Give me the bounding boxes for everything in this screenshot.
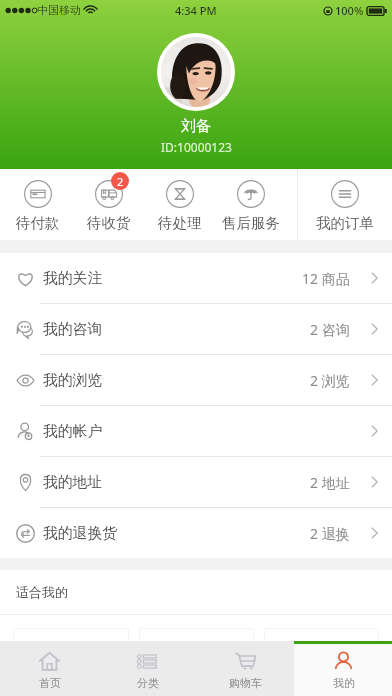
staticText: 我的地址 — [43, 473, 103, 492]
button[interactable]: 我的浏览 — [0, 355, 392, 405]
button[interactable]: 待付款 — [2, 169, 73, 240]
button[interactable]: 分类 — [98, 641, 196, 696]
staticText: 12 商品 — [302, 269, 350, 288]
staticText: 分类 — [137, 676, 159, 690]
staticText: 待处理 — [158, 214, 202, 232]
staticText: 购物车 — [229, 676, 262, 690]
staticText: 首页 — [39, 676, 61, 690]
button[interactable]: 2 — [73, 169, 144, 240]
staticText: 我的关注 — [43, 269, 103, 288]
staticText: 2 咨询 — [310, 320, 350, 339]
button[interactable]: 我的 — [294, 641, 392, 696]
staticText: 2 浏览 — [310, 371, 350, 390]
staticText: 适合我的 — [16, 584, 68, 600]
staticText: 待收货 — [87, 214, 131, 232]
button[interactable]: Profile photo — [157, 33, 235, 111]
button[interactable]: 首页 — [0, 641, 98, 696]
button[interactable]: 购物车 — [196, 641, 294, 696]
button[interactable] — [264, 628, 379, 696]
button[interactable] — [13, 628, 129, 696]
staticText: 待付款 — [16, 214, 60, 232]
button[interactable]: 我的订单 — [298, 169, 392, 240]
button[interactable]: 我的咨询 — [0, 304, 392, 354]
button[interactable]: 我的退换货 — [0, 508, 392, 558]
staticText: 我的 — [333, 676, 355, 690]
staticText: 我的订单 — [316, 214, 374, 232]
button[interactable] — [139, 628, 254, 696]
button[interactable]: 售后服务 — [215, 169, 286, 240]
staticText: 我的浏览 — [43, 371, 103, 390]
staticText: 刘备 — [181, 117, 211, 136]
staticText: 售后服务 — [222, 214, 280, 232]
button[interactable]: 我的关注 — [0, 253, 392, 303]
staticText: 2 — [117, 174, 124, 189]
staticText: 4:34 PM — [175, 3, 217, 18]
button[interactable]: 我的地址 — [0, 457, 392, 507]
staticText: 2 地址 — [310, 473, 350, 492]
staticText: 100% — [335, 3, 364, 18]
staticText: 中国移动 — [37, 3, 81, 17]
staticText: 2 退换 — [310, 524, 350, 543]
staticText: ID:10000123 — [161, 139, 232, 155]
staticText: 我的退换货 — [43, 524, 117, 543]
staticText: 我的帐户 — [43, 422, 103, 441]
button[interactable]: 我的帐户 — [0, 406, 392, 456]
button[interactable]: 待处理 — [144, 169, 215, 240]
staticText: 我的咨询 — [43, 320, 103, 339]
